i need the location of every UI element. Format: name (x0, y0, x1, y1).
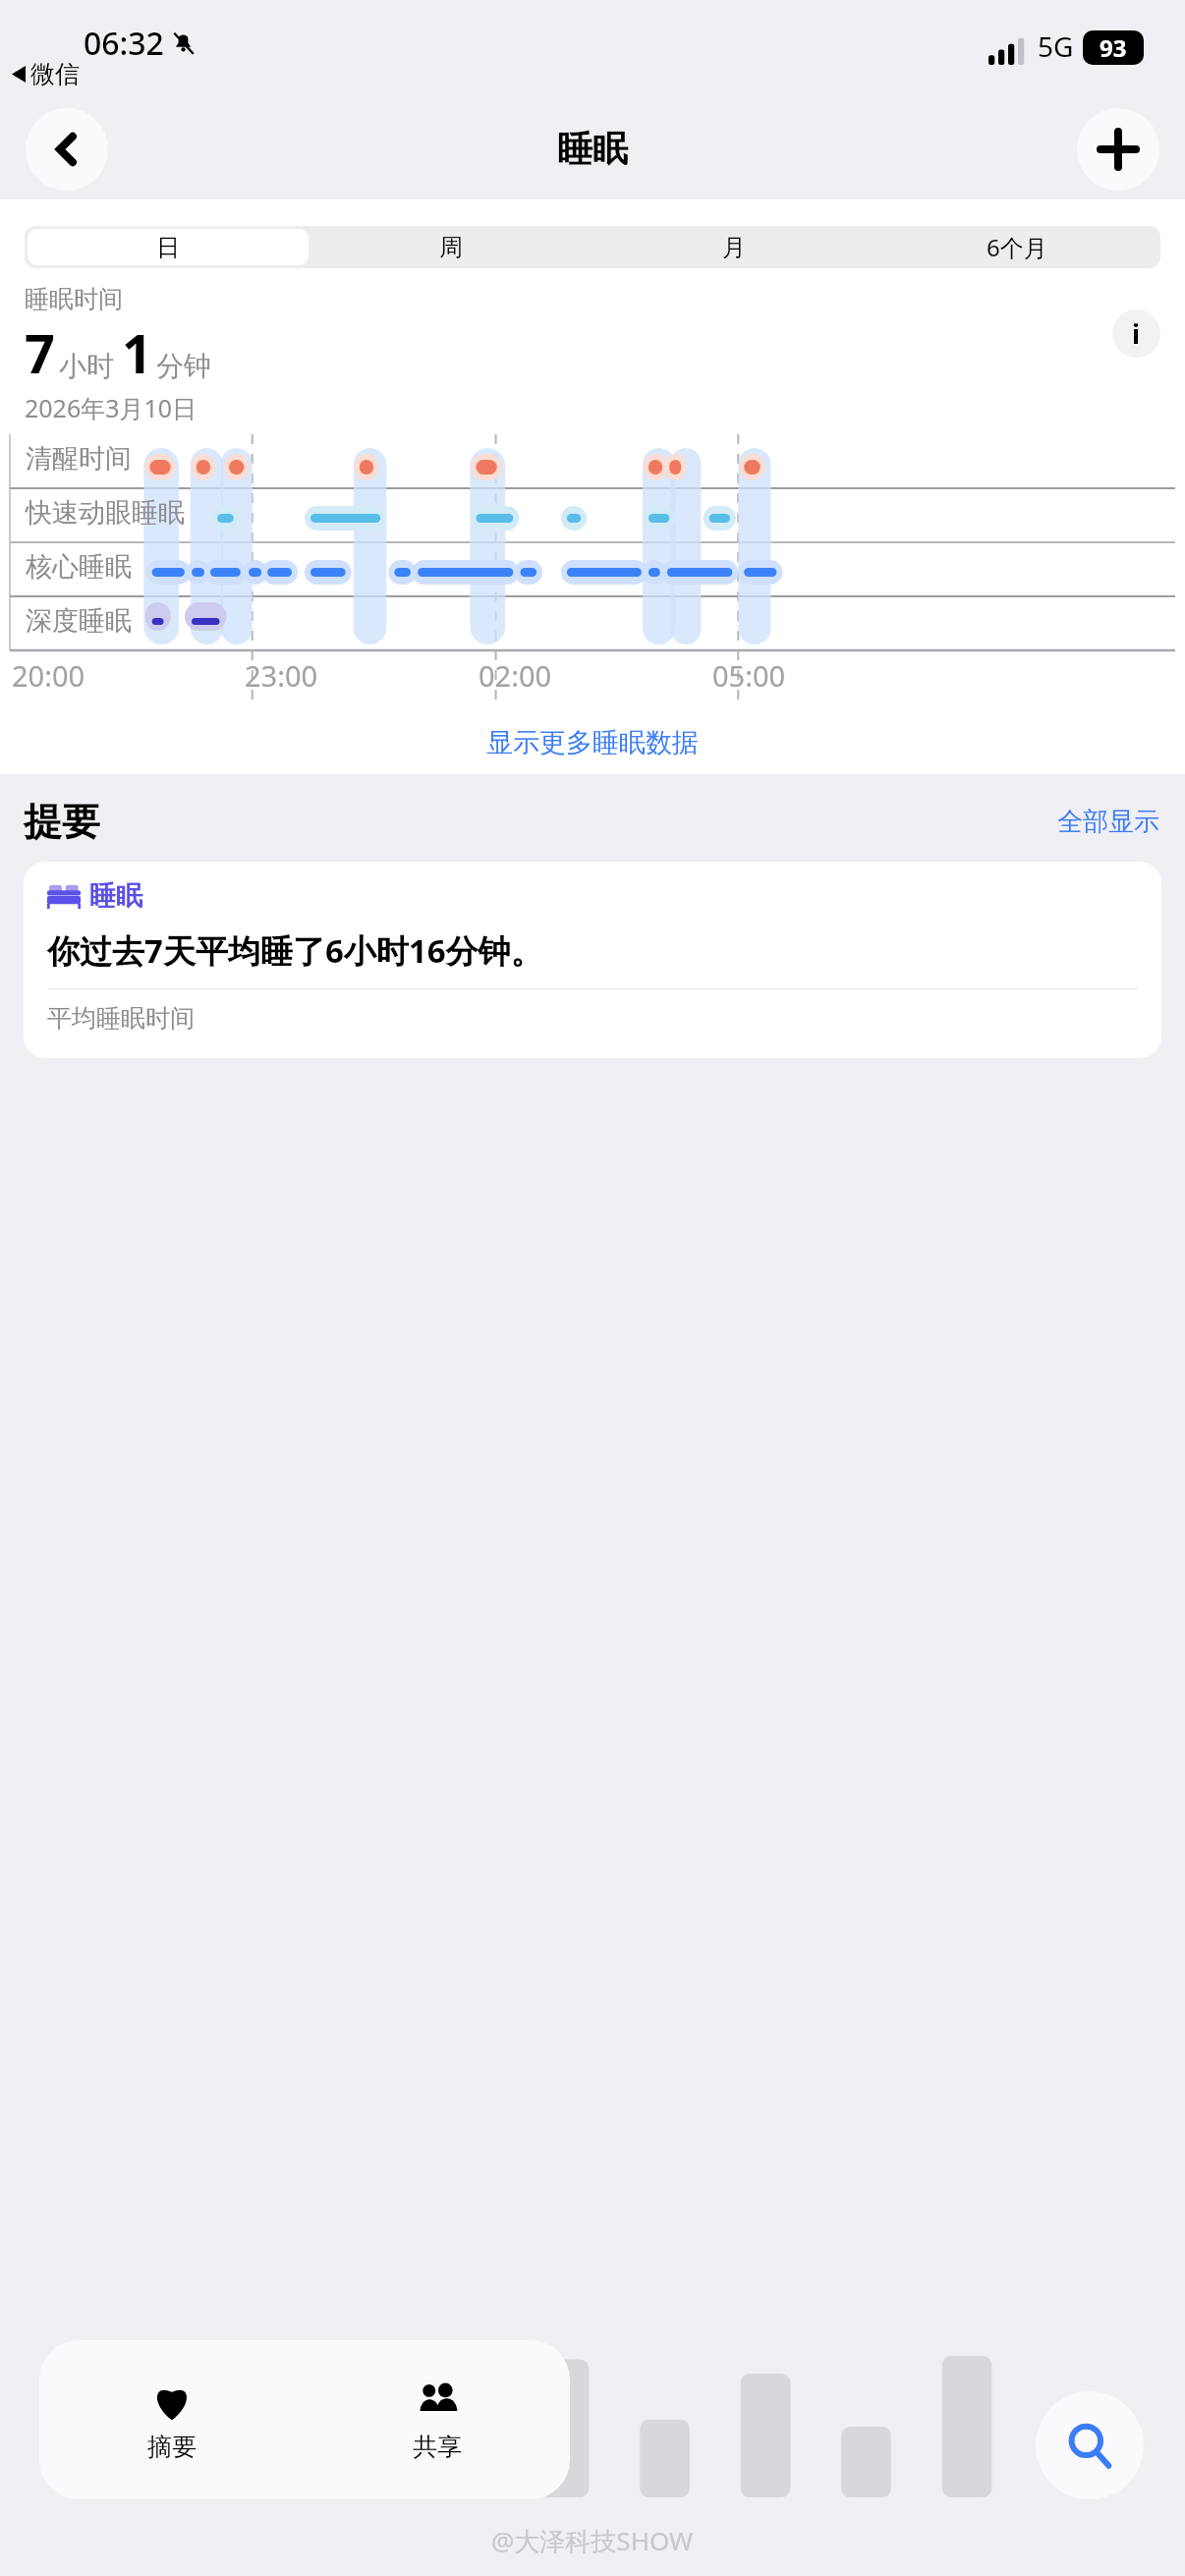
staticText: 06:32 (84, 22, 164, 65)
staticText: 深度睡眠 (26, 604, 132, 638)
staticText: 你过去7天平均睡了6小时16分钟。 (47, 928, 543, 973)
staticText: 睡眠 (89, 879, 142, 913)
staticText: 周 (439, 233, 463, 262)
button[interactable]: 共享 (305, 2340, 570, 2499)
staticText: 全部显示 (1057, 806, 1159, 838)
staticText: 快速动眼睡眠 (26, 496, 185, 530)
staticText: 6个月 (987, 231, 1047, 263)
staticText: i (1132, 315, 1141, 352)
staticText: 小时 (59, 349, 114, 383)
staticText: 日 (156, 233, 180, 262)
staticText: 提要 (24, 798, 100, 846)
staticText: 显示更多睡眠数据 (486, 726, 699, 759)
staticText: 平均睡眠时间 (47, 1003, 195, 1034)
button[interactable]: 6个月 (876, 229, 1157, 265)
staticText: 睡眠时间 (25, 284, 123, 314)
button[interactable]: Search (1036, 2391, 1144, 2499)
button[interactable]: 月 (593, 229, 875, 265)
button[interactable]: 摘要 (39, 2340, 305, 2499)
staticText: 23:00 (245, 656, 318, 695)
staticText: 1 (122, 316, 152, 389)
staticText: 月 (722, 233, 746, 262)
staticText: 共享 (413, 2432, 462, 2462)
staticText: 分钟 (156, 349, 211, 383)
staticText: 微信 (30, 59, 80, 89)
staticText: 核心睡眠 (26, 550, 132, 584)
button[interactable]: 周 (310, 229, 592, 265)
staticText: 摘要 (147, 2432, 197, 2462)
staticText: 睡眠 (557, 127, 628, 171)
staticText: 7 (25, 316, 55, 389)
button[interactable]: Back (26, 108, 108, 191)
staticText: 清醒时间 (26, 442, 132, 476)
button[interactable]: 睡眠 (24, 862, 1161, 1058)
staticText: 20:00 (12, 656, 85, 695)
staticText: 2026年3月10日 (25, 391, 197, 424)
staticText: 93 (1100, 31, 1127, 64)
staticText: 5G (1038, 28, 1074, 65)
staticText: 05:00 (712, 656, 786, 695)
staticText: 02:00 (479, 656, 552, 695)
button[interactable]: 显示更多睡眠数据 (0, 711, 1185, 774)
button[interactable]: 全部显示 (1051, 800, 1165, 844)
button[interactable]: Info (1112, 309, 1160, 358)
button[interactable]: Add (1077, 108, 1159, 191)
staticText: @大泽科技SHOW (491, 2523, 694, 2558)
button[interactable]: 日 (28, 229, 309, 265)
